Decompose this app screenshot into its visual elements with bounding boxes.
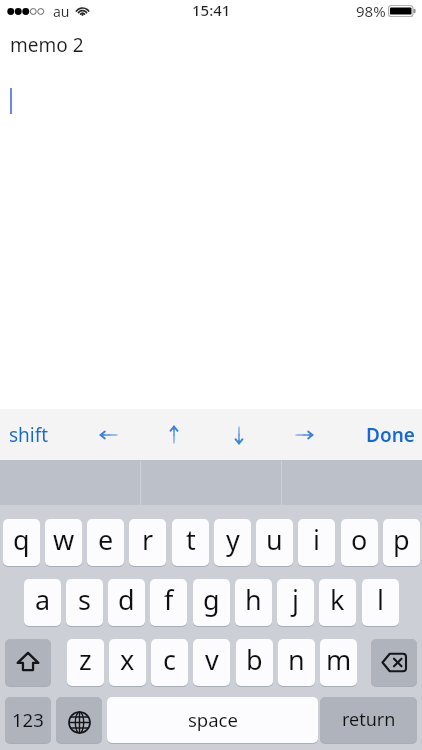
button[interactable]: q bbox=[3, 519, 40, 566]
staticText: k bbox=[330, 581, 345, 618]
staticText: q bbox=[13, 521, 30, 558]
button[interactable]: o bbox=[341, 519, 378, 566]
staticText: Done bbox=[366, 422, 415, 448]
staticText: j bbox=[292, 581, 299, 618]
button[interactable]: z bbox=[67, 639, 104, 686]
button[interactable]: b bbox=[236, 639, 273, 686]
staticText: a bbox=[35, 581, 51, 618]
button[interactable]: Delete bbox=[371, 639, 417, 686]
button[interactable]: k bbox=[319, 579, 356, 626]
staticText: i bbox=[313, 521, 320, 558]
staticText: 98% bbox=[356, 1, 386, 21]
staticText: m bbox=[326, 641, 352, 678]
staticText: space bbox=[188, 707, 238, 732]
button[interactable]: p bbox=[383, 519, 420, 566]
staticText: z bbox=[79, 641, 92, 678]
button[interactable]: 123 bbox=[5, 697, 51, 743]
button[interactable]: j bbox=[277, 579, 314, 626]
button[interactable]: Done bbox=[357, 409, 422, 460]
button[interactable]: space bbox=[107, 697, 318, 743]
button[interactable]: g bbox=[193, 579, 230, 626]
staticText: y bbox=[226, 521, 240, 558]
button[interactable]: f bbox=[150, 579, 187, 626]
button[interactable]: m bbox=[320, 639, 357, 686]
button[interactable]: Next keyboard bbox=[56, 697, 102, 743]
button[interactable]: v bbox=[193, 639, 230, 686]
staticText: v bbox=[205, 641, 219, 678]
staticText: l bbox=[377, 581, 384, 618]
button[interactable]: Memo text bbox=[0, 22, 422, 409]
button[interactable]: u bbox=[256, 519, 293, 566]
button[interactable]: s bbox=[66, 579, 103, 626]
staticText: 123 bbox=[12, 707, 44, 732]
button[interactable]: w bbox=[45, 519, 82, 566]
staticText: u bbox=[266, 521, 283, 558]
staticText: au bbox=[53, 2, 70, 21]
button[interactable]: e bbox=[87, 519, 124, 566]
button[interactable]: a bbox=[24, 579, 61, 626]
button[interactable]: n bbox=[278, 639, 315, 686]
staticText: memo 2 bbox=[10, 32, 84, 58]
button[interactable]: x bbox=[109, 639, 146, 686]
button[interactable]: Shift bbox=[5, 639, 51, 686]
button[interactable]: return bbox=[320, 697, 417, 743]
staticText: s bbox=[78, 581, 91, 618]
button[interactable]: i bbox=[298, 519, 335, 566]
staticText: c bbox=[163, 641, 176, 678]
button[interactable]: shift bbox=[0, 409, 57, 460]
staticText: return bbox=[342, 707, 396, 732]
staticText: p bbox=[393, 521, 410, 558]
staticText: e bbox=[98, 521, 114, 558]
staticText: d bbox=[118, 581, 135, 618]
button[interactable]: d bbox=[108, 579, 145, 626]
staticText: g bbox=[203, 581, 220, 618]
button[interactable]: r bbox=[129, 519, 166, 566]
staticText: shift bbox=[9, 422, 49, 448]
button[interactable]: l bbox=[362, 579, 399, 626]
button[interactable]: Move down bbox=[209, 409, 269, 460]
staticText: w bbox=[53, 521, 75, 558]
button[interactable]: Move left bbox=[79, 409, 139, 460]
button[interactable]: y bbox=[214, 519, 251, 566]
staticText: h bbox=[245, 581, 262, 618]
staticText: t bbox=[186, 521, 196, 558]
staticText: f bbox=[164, 581, 174, 618]
button[interactable]: t bbox=[172, 519, 209, 566]
staticText: n bbox=[288, 641, 305, 678]
staticText: x bbox=[120, 641, 135, 678]
staticText: 15:41 bbox=[192, 0, 231, 20]
button[interactable]: c bbox=[151, 639, 188, 686]
button[interactable]: Move right bbox=[274, 409, 334, 460]
staticText: o bbox=[351, 521, 368, 558]
button[interactable]: Move up bbox=[144, 409, 204, 460]
staticText: r bbox=[142, 521, 154, 558]
staticText: b bbox=[246, 641, 263, 678]
button[interactable]: h bbox=[235, 579, 272, 626]
